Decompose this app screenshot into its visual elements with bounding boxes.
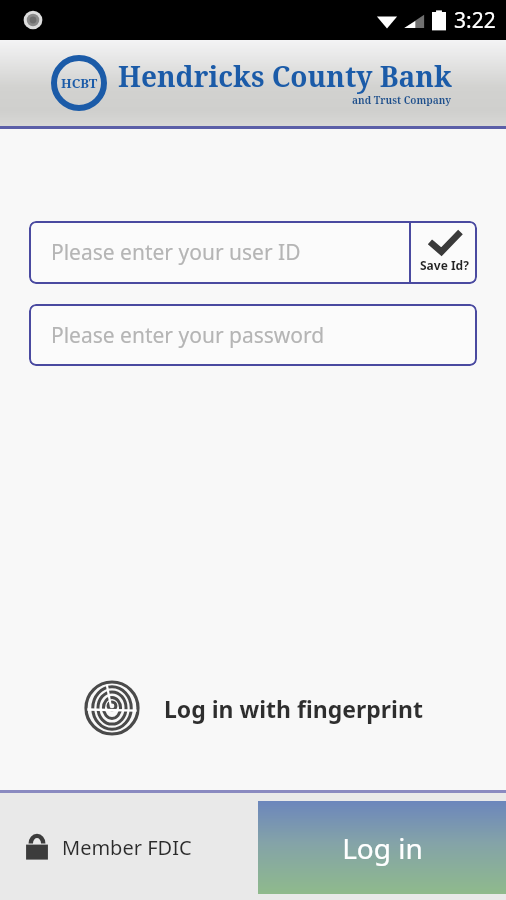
button[interactable]: Member FDIC bbox=[0, 826, 202, 868]
staticText: Member FDIC bbox=[62, 834, 192, 861]
button[interactable]: Log in bbox=[258, 801, 506, 894]
button[interactable]: Save Id bbox=[411, 221, 477, 284]
staticText: Log in with fingerprint bbox=[164, 693, 423, 724]
staticText: Hendricks County Bank bbox=[118, 57, 452, 95]
staticText: and Trust Company bbox=[352, 93, 452, 107]
button[interactable]: Please enter your password bbox=[29, 304, 477, 366]
staticText: Please enter your user ID bbox=[51, 238, 301, 267]
staticText: 3:22 bbox=[454, 6, 496, 35]
staticText: HCBT bbox=[61, 74, 98, 92]
button[interactable]: Log in with fingerprint bbox=[0, 672, 506, 744]
staticText: Log in bbox=[342, 829, 423, 867]
staticText: Please enter your password bbox=[51, 321, 325, 350]
button[interactable]: Please enter your user ID bbox=[29, 221, 409, 284]
staticText: Save Id? bbox=[420, 257, 469, 273]
